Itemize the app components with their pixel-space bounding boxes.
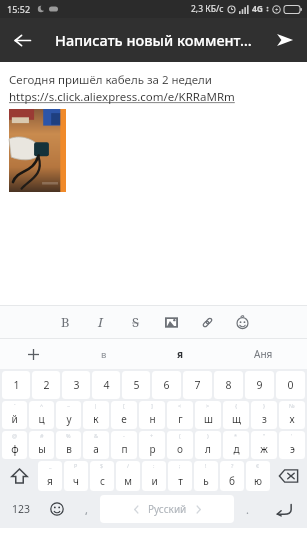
button[interactable]: Shift (1, 461, 37, 491)
button[interactable]: Emoji (41, 493, 73, 525)
button[interactable]: ( (167, 431, 193, 459)
button[interactable]: | (83, 401, 109, 429)
button[interactable]: я (142, 339, 219, 369)
button[interactable]: Italic (87, 309, 113, 335)
button[interactable]: 4 (92, 371, 120, 399)
staticText: @ (12, 432, 17, 439)
button[interactable]: ' (279, 431, 305, 459)
staticText: > (206, 402, 210, 409)
staticText: ~ (67, 402, 71, 409)
button[interactable]: / (116, 461, 140, 491)
staticText: 123 (12, 502, 31, 516)
staticText: в (101, 348, 107, 361)
staticText: | (94, 402, 98, 409)
staticText: 4 (103, 378, 110, 392)
staticText: 9 (256, 378, 263, 392)
button[interactable]: в (66, 339, 142, 369)
button[interactable]: 123 (1, 493, 41, 525)
staticText: в (66, 442, 72, 456)
button[interactable]: ~ (56, 401, 81, 429)
button[interactable]: ) (195, 431, 221, 459)
staticText: - (123, 432, 125, 439)
button[interactable]: - (111, 431, 137, 459)
staticText: [ (123, 402, 125, 409)
staticText: / (127, 462, 130, 469)
staticText: _ (49, 462, 52, 469)
button[interactable]: ` (2, 401, 27, 429)
staticText: € (256, 462, 260, 469)
staticText: $ (100, 462, 104, 469)
button[interactable]: Insert image (158, 309, 184, 335)
staticText: S (132, 313, 140, 331)
button[interactable]: $ (90, 461, 114, 491)
button[interactable]: P (64, 461, 88, 491)
button[interactable]: 2 (32, 371, 60, 399)
staticText: 15:52 (7, 3, 31, 15)
button[interactable]: * (223, 431, 249, 459)
button[interactable]: 0 (276, 371, 305, 399)
button[interactable]: 9 (245, 371, 274, 399)
staticText: ю (254, 474, 262, 488)
staticText: о (177, 442, 183, 456)
staticText: ^ (40, 402, 44, 409)
staticText: ' (291, 432, 293, 439)
button[interactable]: Back (0, 18, 44, 62)
staticText: P (74, 462, 78, 469)
staticText: х (289, 412, 295, 426)
staticText: б (229, 474, 235, 488)
button[interactable]: ! (194, 461, 218, 491)
staticText: м (124, 474, 132, 488)
staticText: к (93, 412, 99, 426)
button[interactable]: Insert emoji (229, 309, 255, 335)
button[interactable]: : (142, 461, 166, 491)
staticText: я (177, 347, 184, 361)
button[interactable]: 5 (122, 371, 150, 399)
button[interactable]: ? (220, 461, 244, 491)
staticText: а (93, 442, 99, 456)
button[interactable]: 7 (183, 371, 212, 399)
staticText: Русский (148, 502, 187, 516)
staticText: Сегодня пришёл кабель за 2 недели (9, 72, 212, 88)
button[interactable]: Insert link (194, 309, 220, 335)
button[interactable]: @ (2, 431, 27, 459)
button[interactable]: Enter (261, 493, 306, 525)
staticText: 8 (225, 378, 232, 392)
button[interactable]: 8 (214, 371, 243, 399)
staticText: . (246, 502, 249, 517)
button[interactable]: [ (111, 401, 137, 429)
button[interactable]: # (29, 431, 54, 459)
button[interactable]: 1 (2, 371, 30, 399)
staticText: # (40, 432, 44, 439)
button[interactable]: 6 (152, 371, 181, 399)
button[interactable]: Backspace (271, 461, 306, 491)
button[interactable]: Period (234, 493, 261, 525)
button[interactable]: Space (100, 495, 234, 523)
button[interactable]: ] (139, 401, 165, 429)
button[interactable]: % (56, 431, 81, 459)
button[interactable]: ; (168, 461, 192, 491)
button[interactable]: & (83, 431, 109, 459)
button[interactable]: € (246, 461, 270, 491)
button[interactable]: > (195, 401, 221, 429)
staticText: Написать новый коммент… (55, 30, 252, 50)
button[interactable]: More suggestions (0, 339, 66, 369)
staticText: 1 (13, 378, 20, 392)
staticText: л (205, 442, 211, 456)
button[interactable]: ^ (29, 401, 54, 429)
button[interactable]: Send (263, 18, 307, 62)
button[interactable]: Attached photo (9, 109, 66, 192)
button[interactable]: { (223, 401, 249, 429)
button[interactable]: 3 (62, 371, 90, 399)
button[interactable]: } (251, 401, 277, 429)
button[interactable]: + (139, 431, 165, 459)
button[interactable]: https://s.click.aliexpress.com/e/KRRaMRm (9, 89, 235, 105)
button[interactable]: " (251, 431, 277, 459)
button[interactable]: Bold (52, 309, 78, 335)
button[interactable]: < (167, 401, 193, 429)
button[interactable]: _ (38, 461, 62, 491)
staticText: ь (203, 474, 209, 488)
button[interactable]: Strikethrough (123, 309, 149, 335)
button[interactable]: Аня (219, 339, 307, 369)
button[interactable]: Comma (73, 493, 100, 525)
button[interactable]: № (279, 401, 305, 429)
